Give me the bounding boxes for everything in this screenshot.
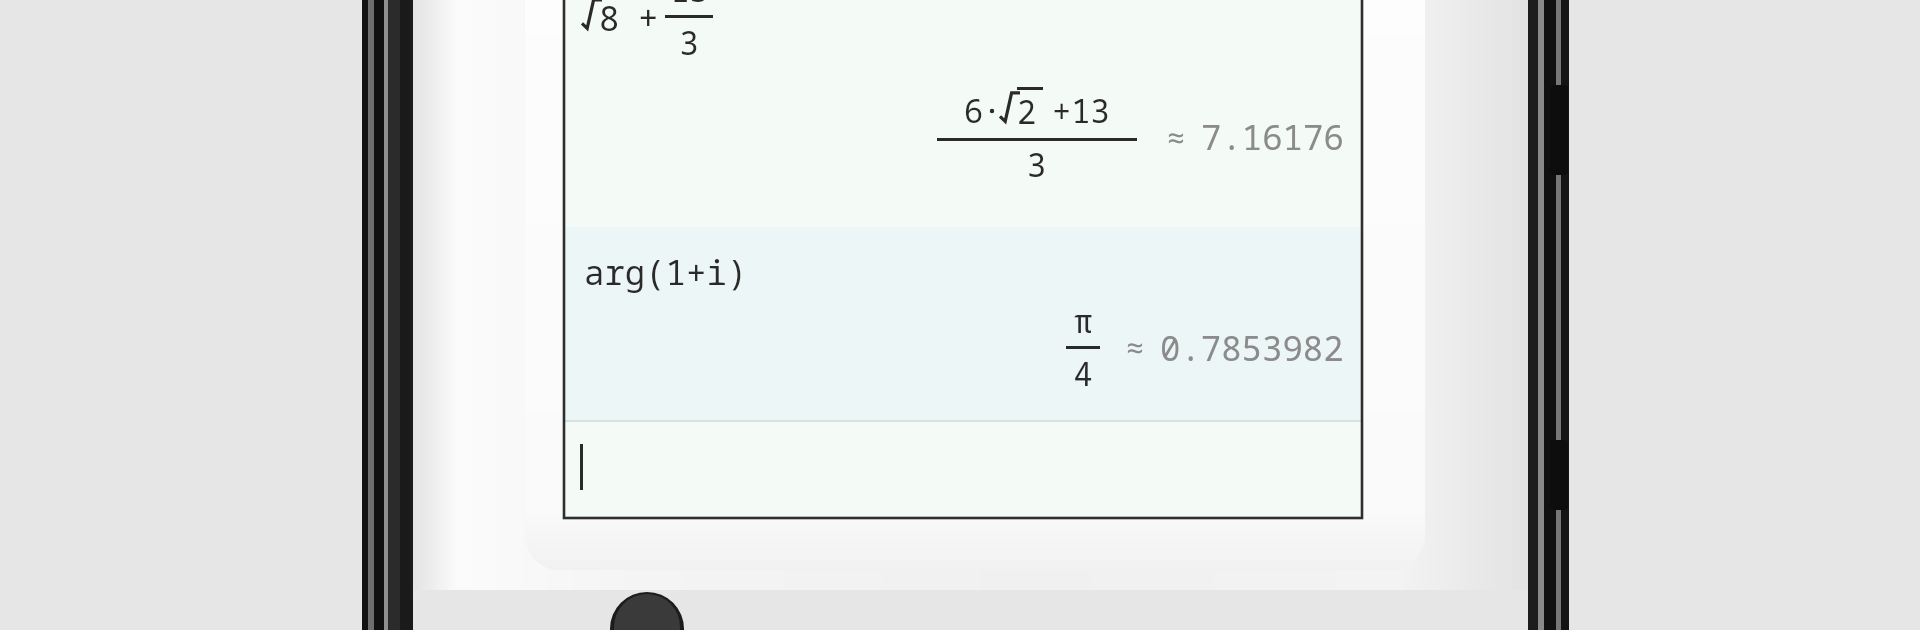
staticText: 3 — [1027, 143, 1047, 187]
staticText: 0.7853982 — [1160, 325, 1344, 371]
staticText: ≈ — [1167, 117, 1185, 158]
button[interactable] — [564, 422, 1362, 518]
staticText: arg(1+i) — [584, 249, 748, 295]
staticText: 13 — [670, 0, 709, 12]
staticText: 2 — [1017, 90, 1037, 134]
staticText: 7.16176 — [1201, 114, 1344, 160]
button[interactable]: 8 — [564, 0, 1362, 227]
staticText: 4 — [1073, 352, 1093, 396]
staticText: 8 — [599, 0, 620, 41]
staticText: + — [638, 0, 659, 40]
staticText: ≈ — [1126, 327, 1144, 368]
staticText: π — [1073, 299, 1093, 343]
button[interactable]: arg(1+i) — [564, 227, 1362, 420]
staticText: 3 — [679, 21, 699, 65]
staticText: 6 — [964, 89, 984, 133]
staticText: +13 — [1052, 89, 1110, 133]
button[interactable]: Home — [610, 592, 684, 630]
